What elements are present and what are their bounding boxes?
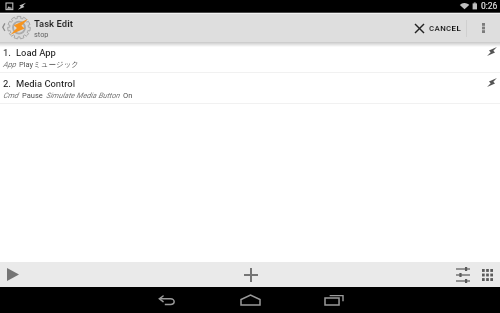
staticText: Pause: [22, 91, 43, 100]
button[interactable]: CANCEL: [415, 14, 462, 42]
button[interactable]: Back: [124, 287, 208, 313]
staticText: 1.: [3, 47, 11, 58]
staticText: 0:26: [481, 1, 498, 11]
staticText: Media Control: [16, 78, 76, 89]
button[interactable]: 2.: [0, 73, 500, 104]
staticText: Cmd: [3, 91, 19, 100]
button[interactable]: Add action: [238, 262, 263, 287]
button[interactable]: Recent apps: [292, 287, 376, 313]
button[interactable]: Run task: [0, 262, 25, 287]
button[interactable]: Grid view: [475, 262, 500, 287]
staticText: Load App: [16, 47, 56, 58]
staticText: Task Edit: [34, 18, 73, 29]
staticText: On: [123, 91, 133, 100]
staticText: App: [3, 60, 16, 69]
button[interactable]: Settings: [450, 262, 475, 287]
staticText: Playミュージック: [19, 60, 80, 69]
staticText: CANCEL: [429, 24, 462, 33]
staticText: Simulate Media Button: [46, 91, 120, 100]
staticText: stop: [34, 30, 49, 39]
button[interactable]: More options: [467, 14, 500, 42]
button[interactable]: Home: [208, 287, 292, 313]
staticText: 2.: [3, 78, 11, 89]
button[interactable]: Back: [0, 14, 8, 42]
button[interactable]: 1.: [0, 42, 500, 73]
